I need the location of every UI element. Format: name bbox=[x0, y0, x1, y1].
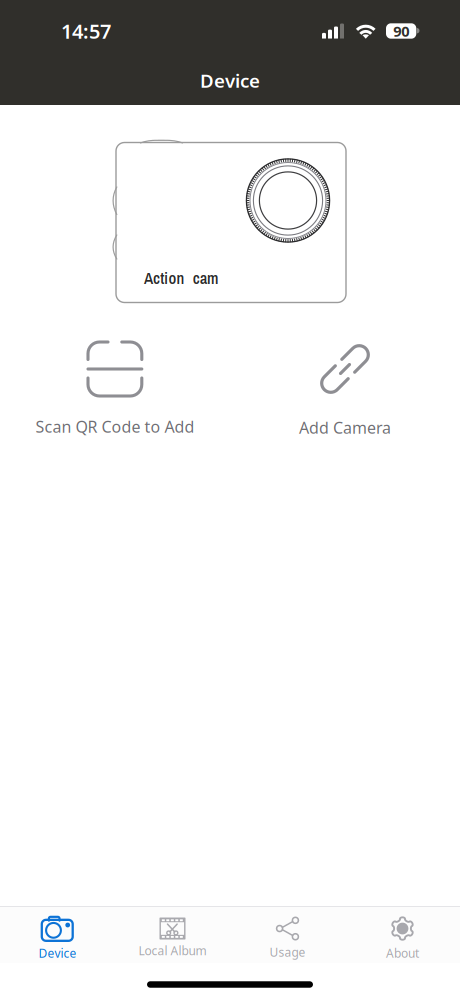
button[interactable]: Usage bbox=[230, 907, 345, 963]
staticText: Local Album bbox=[138, 942, 206, 958]
button[interactable]: Device bbox=[0, 907, 115, 963]
staticText: Add Camera bbox=[299, 417, 391, 438]
button[interactable]: Scan QR Code to Add bbox=[0, 340, 230, 437]
staticText: 90 bbox=[393, 21, 409, 41]
staticText: Usage bbox=[269, 944, 305, 960]
button[interactable]: Local Album bbox=[115, 907, 230, 963]
button[interactable]: About bbox=[345, 907, 460, 963]
staticText: Action cam bbox=[144, 267, 218, 289]
staticText: Device bbox=[200, 68, 260, 93]
staticText: 14:57 bbox=[61, 18, 111, 44]
staticText: About bbox=[386, 945, 419, 961]
staticText: Device bbox=[38, 945, 76, 961]
staticText: Scan QR Code to Add bbox=[35, 416, 194, 437]
button[interactable]: Add Camera bbox=[230, 339, 460, 438]
